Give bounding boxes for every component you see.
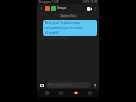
staticText: s'il te plaît ? — [45, 31, 60, 35]
button[interactable]: Messages — [70, 89, 81, 97]
staticText: Aujourd'hui — [61, 14, 76, 18]
button[interactable]: Dites quelque chose... — [46, 82, 91, 88]
button[interactable]: Calls — [55, 89, 66, 97]
staticText: 100% 13:08 — [83, 0, 97, 4]
button[interactable]: Favorites — [41, 89, 52, 97]
staticText: Groupe — [57, 6, 67, 10]
button[interactable]: Voice message — [92, 83, 97, 88]
button[interactable]: Contacts — [84, 89, 95, 97]
staticText: Bouygues 13:08 — [39, 0, 59, 4]
button[interactable]: Back — [38, 5, 44, 11]
button[interactable]: Video call — [86, 5, 93, 12]
staticText: 13:11 Remis à Marie et Jean — [39, 37, 69, 40]
button[interactable]: More options — [93, 6, 98, 11]
staticText: une question je peux te rendre — [45, 26, 83, 30]
staticText: Dites quelque chose... — [48, 83, 75, 87]
staticText: Merci ça va ? Je peux te poser — [45, 21, 81, 25]
button[interactable]: Camera — [39, 82, 45, 88]
button[interactable]: Merci ça va ? Je peux te poser — [43, 20, 97, 36]
